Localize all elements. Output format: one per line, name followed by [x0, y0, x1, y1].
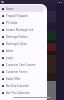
- button[interactable]: Login: [0, 54, 44, 61]
- button[interactable]: Net Plus Subscribe: [0, 89, 44, 96]
- staticText: Customer Forms: [6, 70, 28, 74]
- staticText: Radio Offer: [6, 77, 21, 81]
- button[interactable]: Net Bus Subscribe: [0, 82, 44, 89]
- button[interactable]: Customer Forms: [0, 68, 44, 75]
- staticText: Instant Recharge Link: [6, 28, 34, 32]
- button[interactable]: Recharge Online: [0, 40, 44, 47]
- button[interactable]: Instant Recharge Link: [0, 26, 44, 33]
- staticText: Prepaid Postpaid: [6, 14, 28, 18]
- staticText: Recharge Outlets: [6, 35, 28, 39]
- button[interactable]: Recharge Outlets: [0, 33, 44, 40]
- staticText: Login: [6, 56, 14, 60]
- button[interactable]: Radio Offer: [0, 75, 44, 82]
- staticText: Alerts: [6, 49, 14, 53]
- staticText: TV Guide: [6, 21, 18, 25]
- staticText: Recharge Online: [6, 42, 27, 46]
- staticText: Home: [6, 7, 14, 11]
- staticText: Net Plus Subscribe: [6, 91, 30, 95]
- button[interactable]: TV Guide: [0, 19, 44, 26]
- button[interactable]: Alerts: [0, 47, 44, 54]
- button[interactable]: Home: [0, 5, 44, 12]
- staticText: Net Bus Subscribe: [6, 84, 29, 88]
- button[interactable]: Customer Care Centers: [0, 61, 44, 68]
- button[interactable]: Prepaid Postpaid: [0, 12, 44, 19]
- staticText: Customer Care Centers: [6, 63, 36, 67]
